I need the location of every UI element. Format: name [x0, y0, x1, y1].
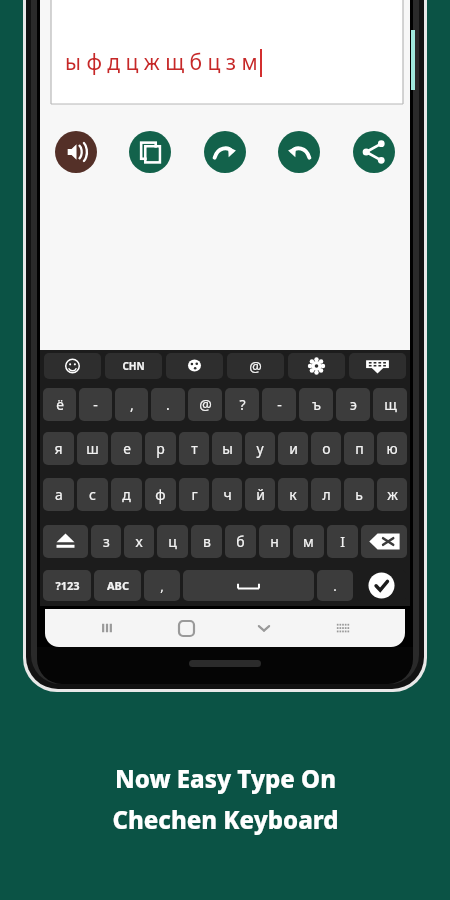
- staticText: к: [289, 485, 297, 504]
- button[interactable]: CHN: [105, 353, 162, 379]
- staticText: у: [256, 439, 264, 458]
- staticText: ю: [386, 439, 398, 458]
- button[interactable]: .: [317, 570, 353, 601]
- staticText: и: [289, 439, 298, 458]
- staticText: -: [93, 395, 98, 414]
- staticText: Chechen Keyboard: [112, 803, 339, 836]
- staticText: п: [355, 439, 364, 458]
- button[interactable]: ш: [77, 432, 108, 465]
- button[interactable]: Shift: [43, 525, 88, 558]
- button[interactable]: д: [111, 478, 142, 511]
- staticText: з: [103, 532, 110, 551]
- button[interactable]: Hide keyboard: [248, 612, 280, 644]
- staticText: ы: [222, 439, 233, 458]
- button[interactable]: ц: [157, 525, 188, 558]
- button[interactable]: с: [77, 478, 108, 511]
- staticText: л: [322, 485, 331, 504]
- button[interactable]: -: [79, 388, 112, 421]
- staticText: Now Easy Type On: [115, 762, 336, 795]
- button[interactable]: ё: [43, 388, 76, 421]
- button[interactable]: з: [91, 525, 121, 558]
- staticText: -: [277, 395, 282, 414]
- button[interactable]: б: [225, 525, 256, 558]
- button[interactable]: Undo: [278, 131, 320, 173]
- button[interactable]: Backspace: [361, 525, 407, 558]
- button[interactable]: и: [278, 432, 308, 465]
- button[interactable]: щ: [373, 388, 407, 421]
- button[interactable]: Enter: [356, 570, 407, 601]
- button[interactable]: Home: [170, 612, 202, 644]
- staticText: в: [203, 532, 211, 551]
- button[interactable]: г: [179, 478, 209, 511]
- staticText: ж: [387, 485, 398, 504]
- staticText: а: [55, 485, 63, 504]
- staticText: е: [123, 439, 131, 458]
- button[interactable]: ,: [144, 570, 180, 601]
- button[interactable]: ф: [145, 478, 176, 511]
- button[interactable]: ю: [377, 432, 407, 465]
- button[interactable]: й: [245, 478, 275, 511]
- button[interactable]: э: [336, 388, 370, 421]
- button[interactable]: ?123: [43, 570, 91, 601]
- button[interactable]: Share: [353, 131, 395, 173]
- button[interactable]: е: [111, 432, 142, 465]
- button[interactable]: ь: [344, 478, 374, 511]
- staticText: х: [135, 532, 143, 551]
- button[interactable]: ж: [377, 478, 407, 511]
- button[interactable]: Recents: [91, 612, 123, 644]
- staticText: о: [322, 439, 331, 458]
- button[interactable]: Switch keyboard: [327, 612, 359, 644]
- staticText: м: [303, 532, 314, 551]
- staticText: ABC: [107, 578, 129, 593]
- staticText: ч: [223, 485, 232, 504]
- staticText: я: [54, 439, 63, 458]
- staticText: CHN: [122, 359, 145, 373]
- button[interactable]: р: [145, 432, 176, 465]
- button[interactable]: м: [293, 525, 324, 558]
- staticText: ,: [160, 577, 164, 595]
- button[interactable]: -: [262, 388, 296, 421]
- button[interactable]: о: [311, 432, 341, 465]
- button[interactable]: л: [311, 478, 341, 511]
- staticText: ф: [155, 485, 166, 504]
- button[interactable]: п: [344, 432, 374, 465]
- button[interactable]: х: [124, 525, 154, 558]
- button[interactable]: Copy: [129, 131, 171, 173]
- button[interactable]: ,: [115, 388, 148, 421]
- button[interactable]: Keyboard layout: [349, 353, 406, 379]
- button[interactable]: к: [278, 478, 308, 511]
- button[interactable]: я: [43, 432, 74, 465]
- button[interactable]: ъ: [299, 388, 333, 421]
- button[interactable]: ы: [212, 432, 242, 465]
- button[interactable]: .: [151, 388, 185, 421]
- button[interactable]: т: [179, 432, 209, 465]
- button[interactable]: Theme: [166, 353, 223, 379]
- button[interactable]: Settings: [288, 353, 345, 379]
- staticText: ш: [86, 439, 99, 458]
- staticText: .: [333, 577, 337, 595]
- staticText: ?: [239, 395, 246, 414]
- button[interactable]: ?: [225, 388, 259, 421]
- button[interactable]: в: [191, 525, 222, 558]
- button[interactable]: Emoji: [44, 353, 101, 379]
- staticText: с: [89, 485, 96, 504]
- button[interactable]: у: [245, 432, 275, 465]
- button[interactable]: Space: [183, 570, 314, 601]
- button[interactable]: Redo: [204, 131, 246, 173]
- button[interactable]: ABC: [94, 570, 141, 601]
- staticText: ы ф д ц ж щ б ц з м: [65, 48, 258, 77]
- button[interactable]: I: [327, 525, 358, 558]
- staticText: н: [270, 532, 279, 551]
- button[interactable]: н: [259, 525, 290, 558]
- staticText: э: [350, 395, 357, 414]
- button[interactable]: @: [227, 353, 284, 379]
- staticText: ?123: [55, 578, 80, 593]
- button[interactable]: ч: [212, 478, 242, 511]
- button[interactable]: @: [188, 388, 222, 421]
- staticText: щ: [384, 395, 397, 414]
- button[interactable]: Speak: [55, 131, 97, 173]
- staticText: г: [191, 485, 198, 504]
- staticText: @: [199, 395, 212, 414]
- staticText: д: [122, 485, 131, 504]
- button[interactable]: а: [43, 478, 74, 511]
